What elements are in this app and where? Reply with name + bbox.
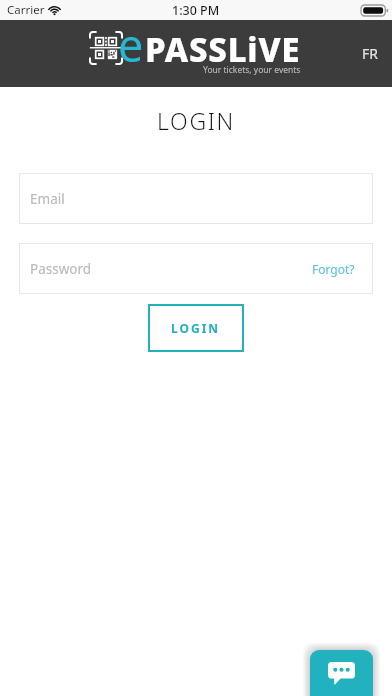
staticText: Your tickets, your events: [203, 64, 301, 76]
button[interactable]: Chat: [310, 650, 373, 696]
staticText: 1:30 PM: [172, 2, 220, 19]
button[interactable]: LOGIN: [148, 304, 244, 352]
button[interactable]: FR: [345, 34, 392, 73]
staticText: Carrier: [7, 2, 45, 18]
staticText: Forgot?: [312, 261, 355, 277]
staticText: FR: [362, 44, 378, 63]
staticText: e: [118, 14, 144, 75]
staticText: LOGIN: [171, 320, 221, 336]
button[interactable]: Email: [19, 173, 373, 224]
button[interactable]: Forgot?: [298, 251, 373, 287]
staticText: LOGIN: [0, 105, 392, 136]
staticText: Password: [30, 260, 92, 278]
staticText: Email: [30, 190, 65, 208]
button[interactable]: Password: [19, 243, 373, 294]
staticText: PASSLiVE: [145, 27, 301, 72]
